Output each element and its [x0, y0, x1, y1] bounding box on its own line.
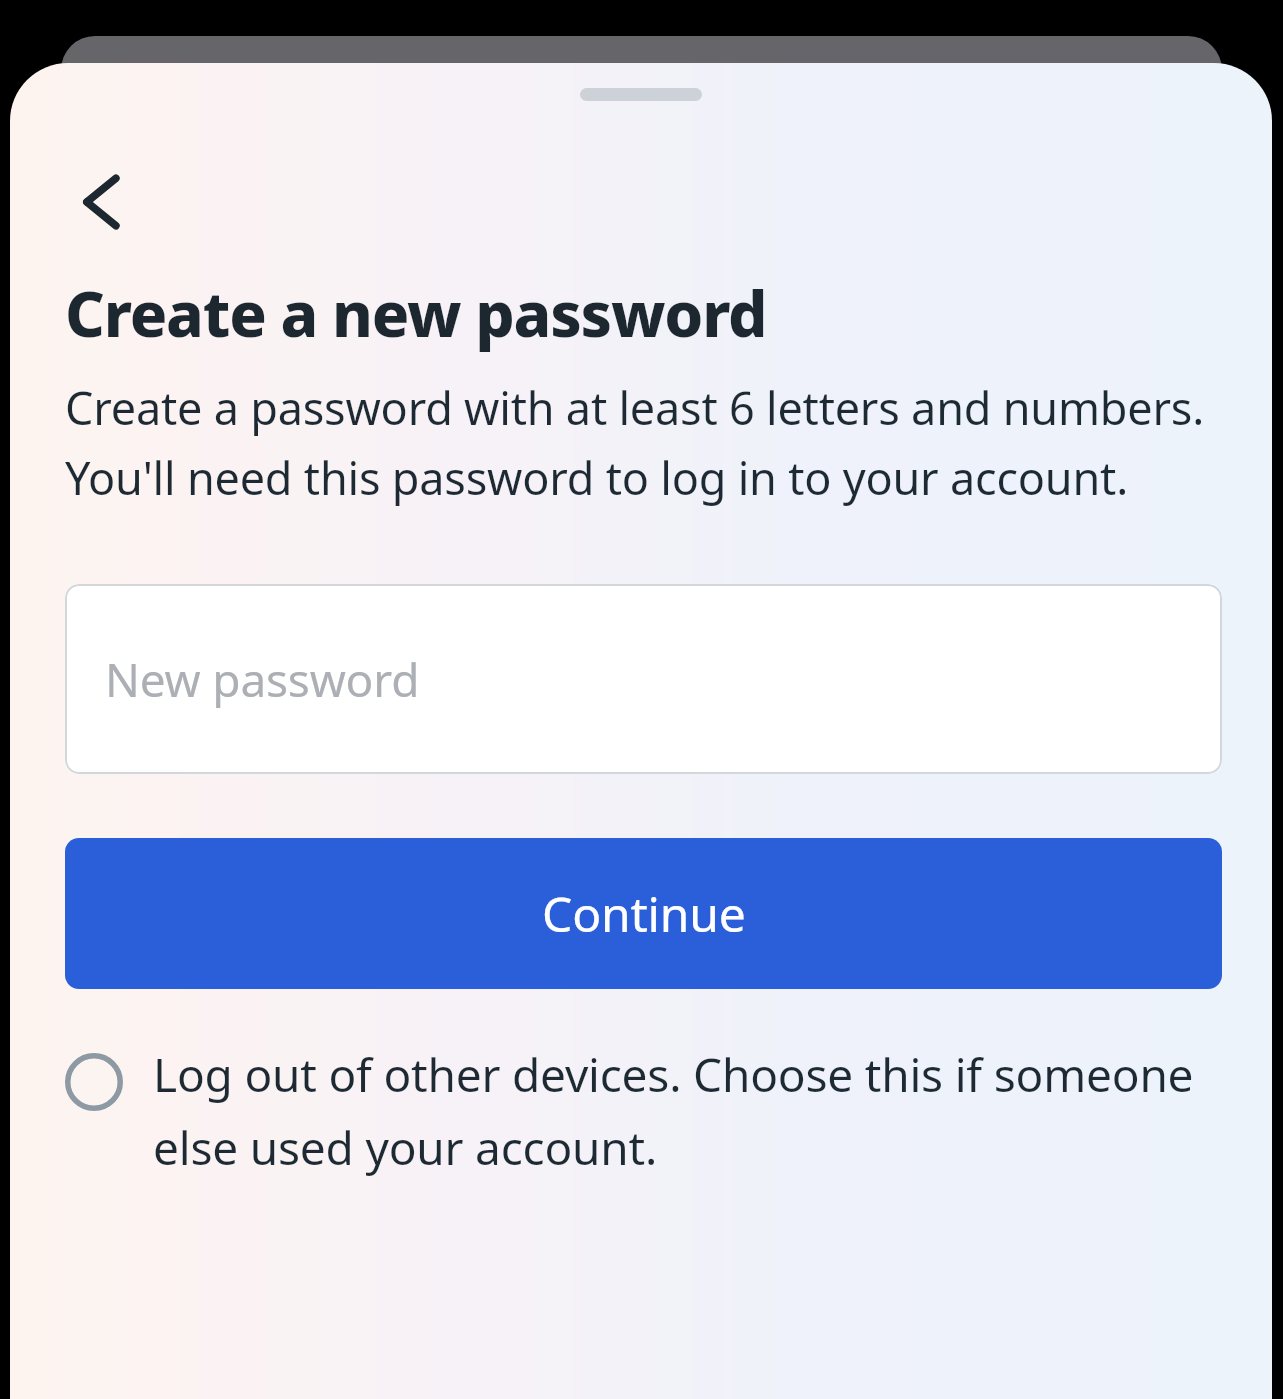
button[interactable]: Continue — [65, 838, 1222, 989]
staticText: Create a new password — [65, 271, 767, 355]
button[interactable]: Log out of other devices. Choose this if… — [65, 1035, 1222, 1186]
button[interactable]: Back — [48, 147, 158, 257]
button[interactable]: New password — [65, 584, 1222, 774]
staticText: New password — [105, 648, 420, 711]
staticText: Log out of other devices. Choose this if… — [153, 1043, 1222, 1178]
staticText: Create a password with at least 6 letter… — [65, 377, 1222, 508]
staticText: Continue — [542, 881, 746, 946]
